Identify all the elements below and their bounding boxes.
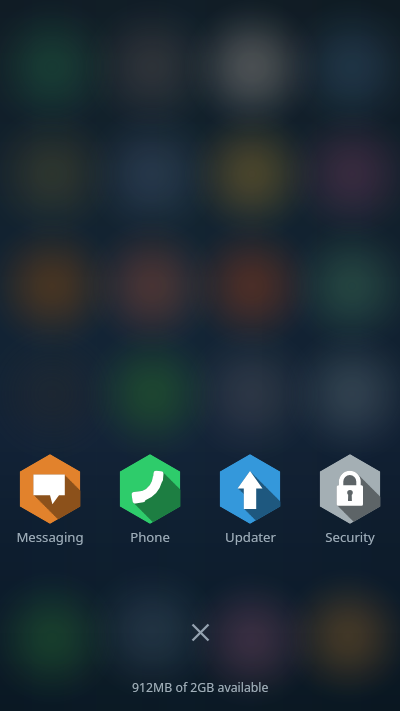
button[interactable]: Messaging bbox=[0, 454, 100, 546]
button[interactable]: Phone bbox=[100, 454, 200, 546]
staticText: 912MB of 2GB available bbox=[132, 679, 269, 696]
staticText: Updater bbox=[225, 528, 276, 546]
button[interactable]: Updater bbox=[200, 454, 300, 546]
staticText: Phone bbox=[130, 528, 170, 546]
staticText: Security bbox=[325, 528, 375, 546]
button[interactable]: Close all apps bbox=[179, 611, 221, 653]
staticText: Messaging bbox=[16, 528, 84, 546]
button[interactable]: Security bbox=[300, 454, 400, 546]
